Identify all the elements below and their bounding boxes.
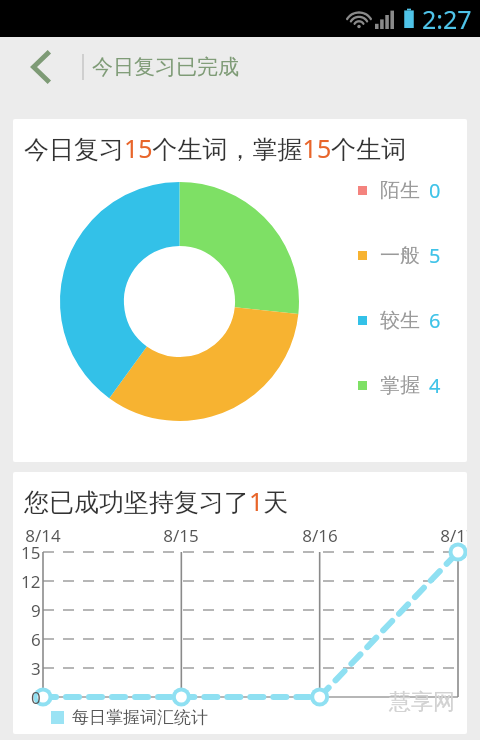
staticText: 掌握	[380, 373, 420, 398]
staticText: 5	[429, 242, 441, 268]
staticText: 3	[31, 657, 41, 680]
staticText: 6	[31, 628, 41, 651]
staticText: 2:27	[422, 2, 472, 36]
staticText: 0	[429, 177, 441, 203]
staticText: 一般	[380, 243, 420, 268]
staticText: 今日复习15个生词，掌握15个生词	[24, 131, 407, 165]
button[interactable]: 一般	[358, 242, 441, 268]
staticText: 12	[21, 570, 41, 593]
button[interactable]: 较生	[358, 307, 441, 333]
staticText: 8/16	[302, 524, 338, 547]
staticText: 陌生	[380, 178, 420, 203]
button[interactable]: 掌握	[358, 372, 441, 398]
button[interactable]: Back	[18, 44, 64, 90]
staticText: 0	[31, 686, 41, 709]
staticText: 4	[429, 372, 441, 398]
staticText: 慧享网	[389, 688, 455, 716]
staticText: 8/15	[163, 524, 199, 547]
staticText: 9	[31, 599, 41, 622]
staticText: 您已成功坚持复习了1天	[24, 484, 289, 518]
staticText: 8/14	[25, 524, 61, 547]
staticText: 6	[429, 307, 441, 333]
staticText: 15	[21, 541, 41, 564]
staticText: 8/17	[440, 524, 467, 547]
staticText: 每日掌握词汇统计	[72, 707, 208, 728]
button[interactable]: 每日掌握词汇统计	[51, 707, 208, 728]
staticText: 较生	[380, 308, 420, 333]
button[interactable]: 陌生	[358, 177, 441, 203]
staticText: 今日复习已完成	[92, 54, 239, 80]
